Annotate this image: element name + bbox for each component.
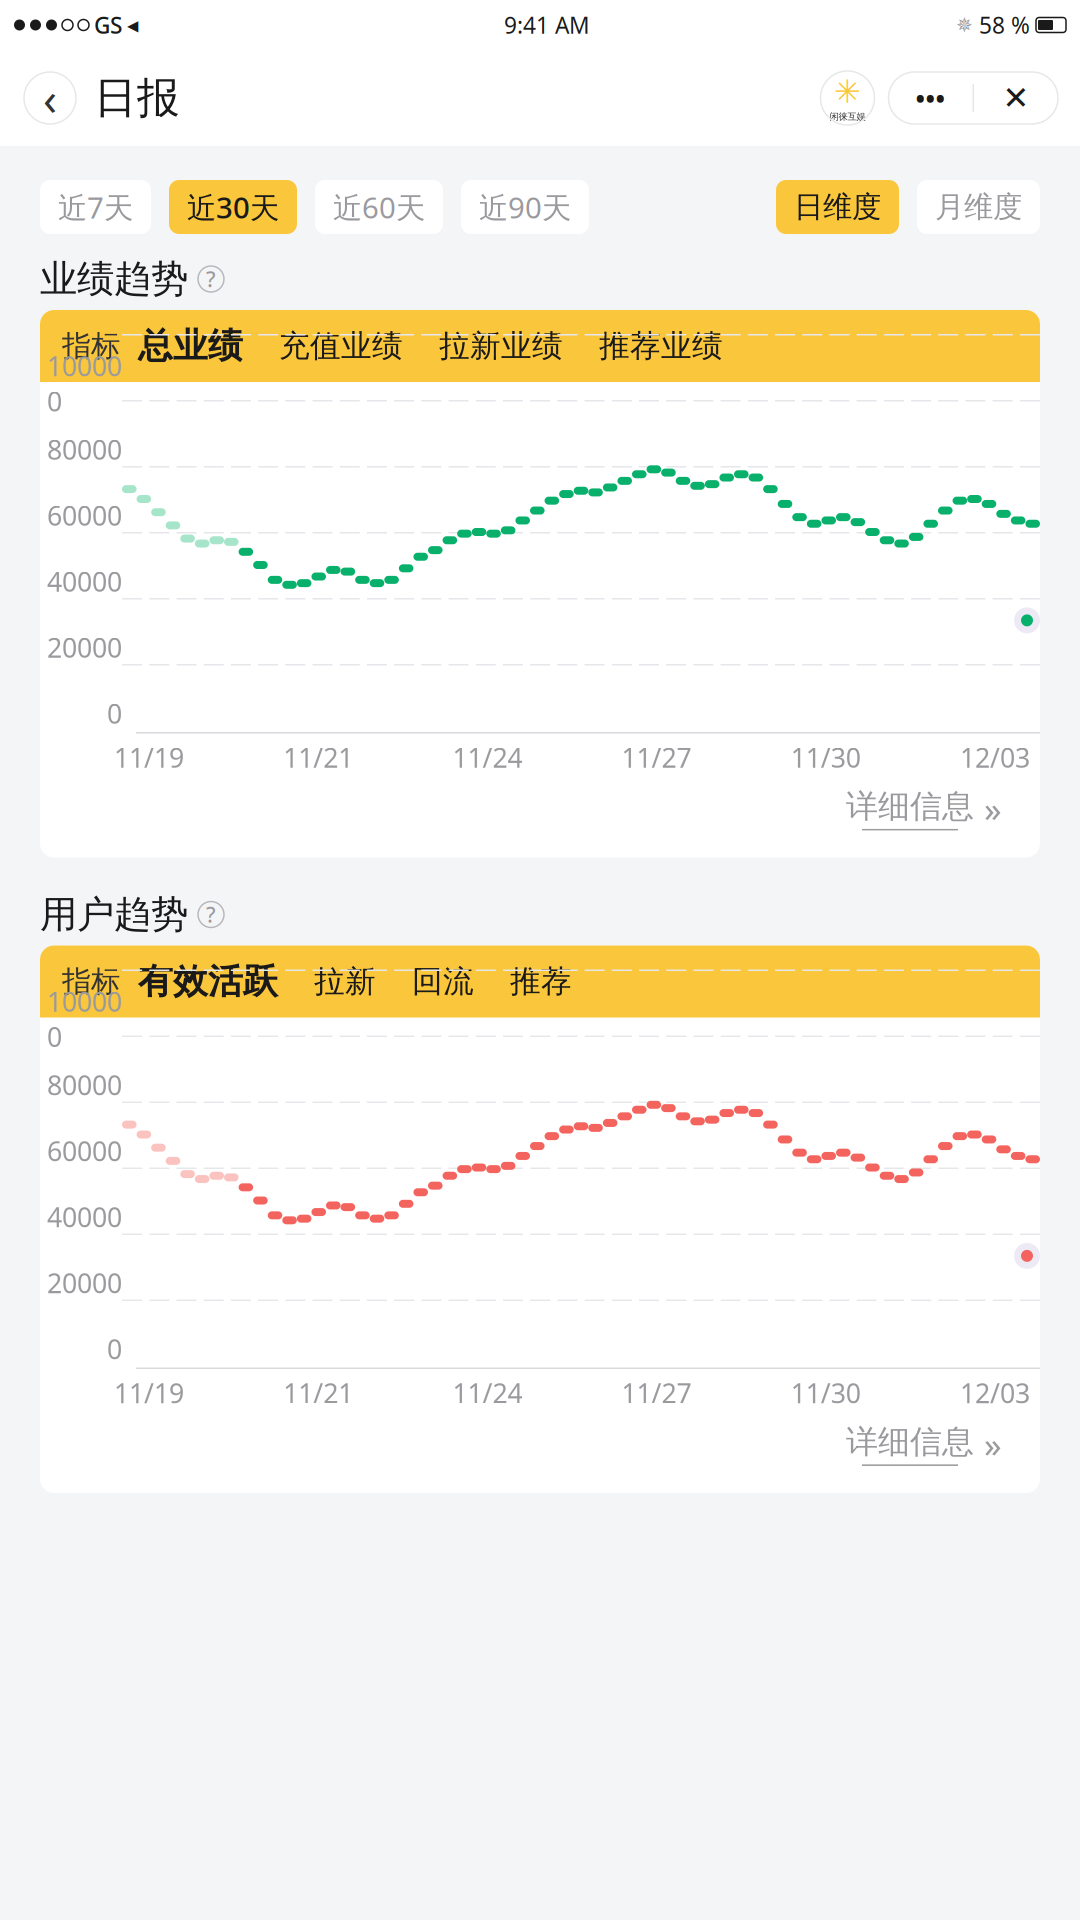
staticText: ? [206, 265, 216, 293]
button[interactable]: Back [22, 70, 78, 126]
staticText: ✕ [1002, 80, 1029, 116]
staticText: 80000 [47, 432, 122, 467]
button[interactable]: Close [974, 72, 1058, 124]
staticText: 近30天 [187, 187, 279, 226]
button[interactable]: 总业绩 [120, 310, 261, 382]
staticText: 详细信息 [846, 1422, 974, 1461]
staticText: 指标 [62, 328, 120, 364]
button[interactable]: 回流 [394, 945, 492, 1017]
staticText: 11/27 [622, 1375, 692, 1411]
staticText: 拉新 [314, 963, 376, 1000]
staticText: 12/03 [960, 1375, 1030, 1411]
staticText: 60000 [47, 498, 122, 533]
staticText: 回流 [412, 963, 474, 1000]
staticText: ? [206, 900, 216, 929]
button[interactable]: 推荐 [492, 945, 590, 1017]
staticText: 11/19 [114, 1375, 184, 1411]
staticText: 58 % [979, 10, 1030, 40]
staticText: 40000 [47, 564, 122, 599]
staticText: 11/30 [791, 740, 861, 775]
staticText: 推荐业绩 [599, 327, 723, 365]
staticText: 详细信息 [846, 787, 974, 826]
staticText: 9:41 AM [504, 10, 590, 40]
staticText: 日维度 [794, 189, 881, 225]
staticText: 40000 [47, 1199, 122, 1235]
staticText: 总业绩 [138, 325, 243, 367]
button[interactable]: 日维度 [776, 180, 899, 234]
staticText: 0 [107, 696, 122, 731]
staticText: 有效活跃 [138, 960, 278, 1003]
staticText: 拉新业绩 [439, 327, 563, 365]
staticText: 11/24 [452, 1375, 522, 1411]
staticText: 80000 [47, 1067, 122, 1103]
button[interactable]: 充值业绩 [261, 310, 421, 382]
staticText: 11/21 [283, 1375, 353, 1411]
staticText: » [984, 1421, 1002, 1467]
button[interactable]: 近7天 [40, 180, 151, 234]
staticText: 0 [107, 1331, 122, 1367]
staticText: 用户趋势 [40, 892, 188, 937]
staticText: 11/24 [452, 740, 522, 775]
button[interactable]: 近30天 [169, 180, 297, 234]
button[interactable]: 近60天 [315, 180, 443, 234]
staticText: ‹ [43, 68, 57, 128]
staticText: 近90天 [479, 187, 571, 226]
staticText: 100000 [47, 348, 122, 419]
button[interactable]: 拉新 [296, 945, 394, 1017]
button[interactable]: 有效活跃 [120, 945, 296, 1017]
staticText: 11/30 [791, 1375, 861, 1411]
staticText: » [984, 785, 1002, 831]
staticText: 近7天 [58, 187, 133, 226]
staticText: 12/03 [960, 740, 1030, 775]
button[interactable]: 月维度 [917, 180, 1040, 234]
staticText: 指标 [62, 963, 120, 999]
staticText: 月维度 [935, 189, 1022, 225]
staticText: 20000 [47, 1265, 122, 1301]
staticText: 100000 [47, 984, 122, 1054]
staticText: ✵ [956, 14, 973, 36]
button[interactable]: 近90天 [461, 180, 589, 234]
staticText: ✳ [834, 74, 861, 110]
button[interactable]: 闲徕互娱 [820, 71, 874, 125]
button[interactable]: More [888, 72, 972, 124]
button[interactable]: 推荐业绩 [581, 310, 741, 382]
staticText: 11/19 [114, 740, 184, 775]
staticText: 60000 [47, 1133, 122, 1169]
staticText: 日报 [94, 72, 180, 124]
staticText: 11/27 [622, 740, 692, 775]
staticText: 推荐 [510, 963, 572, 1000]
staticText: 闲徕互娱 [829, 111, 865, 122]
button[interactable]: 拉新业绩 [421, 310, 581, 382]
button[interactable]: 详细信息 [838, 781, 1010, 835]
staticText: 充值业绩 [279, 327, 403, 365]
staticText: ••• [915, 81, 945, 115]
staticText: GS [94, 10, 122, 40]
staticText: ◂ [127, 12, 138, 38]
button[interactable]: 详细信息 [838, 1417, 1010, 1471]
staticText: 11/21 [283, 740, 353, 775]
staticText: 业绩趋势 [40, 256, 188, 302]
staticText: 20000 [47, 630, 122, 665]
staticText: 近60天 [333, 187, 425, 226]
